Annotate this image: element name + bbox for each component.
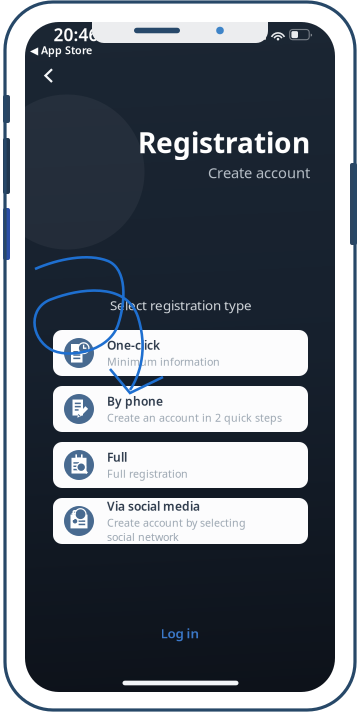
button[interactable]: f bbox=[53, 498, 308, 544]
staticText: Via social media bbox=[107, 498, 200, 514]
staticText: Full registration bbox=[107, 467, 188, 481]
staticText: Minimum information bbox=[107, 355, 220, 369]
button[interactable]: Full bbox=[53, 442, 308, 488]
button[interactable]: One-click bbox=[53, 330, 308, 376]
button[interactable]: By phone bbox=[53, 386, 308, 432]
button[interactable]: Back bbox=[35, 59, 63, 92]
staticText: One-click bbox=[107, 337, 160, 353]
staticText: Create account bbox=[208, 163, 310, 182]
staticText: Select registration type bbox=[110, 296, 252, 314]
staticText: Log in bbox=[160, 624, 199, 642]
staticText: 20:46 bbox=[53, 23, 98, 46]
staticText: By phone bbox=[107, 393, 163, 409]
staticText: ◀ App Store bbox=[30, 43, 92, 57]
staticText: f bbox=[71, 507, 76, 523]
staticText: Create an account in 2 quick steps bbox=[107, 411, 282, 425]
staticText: Full bbox=[107, 449, 127, 465]
staticText: Registration bbox=[138, 124, 310, 161]
staticText: Create account by selecting social netwo… bbox=[107, 516, 246, 544]
button[interactable]: Log in bbox=[152, 616, 207, 650]
